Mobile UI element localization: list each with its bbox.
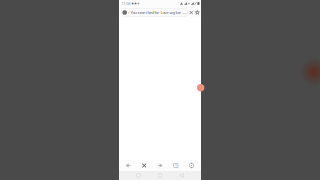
button[interactable]: Forward <box>152 160 168 171</box>
button[interactable]: Bookmark <box>194 7 200 18</box>
button[interactable]: Home <box>158 173 162 177</box>
button[interactable]: Close tab <box>136 160 152 171</box>
button[interactable]: Back <box>180 173 183 177</box>
button[interactable]: More options <box>184 160 199 171</box>
staticText: 1 <box>175 163 177 168</box>
staticText: 11:04 <box>121 1 130 6</box>
staticText: › <box>128 9 130 16</box>
staticText: You searched for Love wg kar - M <box>130 10 187 15</box>
button[interactable]: Back <box>120 160 136 171</box>
button[interactable]: Tabs <box>168 160 184 171</box>
button[interactable]: Stop loading <box>188 7 194 18</box>
